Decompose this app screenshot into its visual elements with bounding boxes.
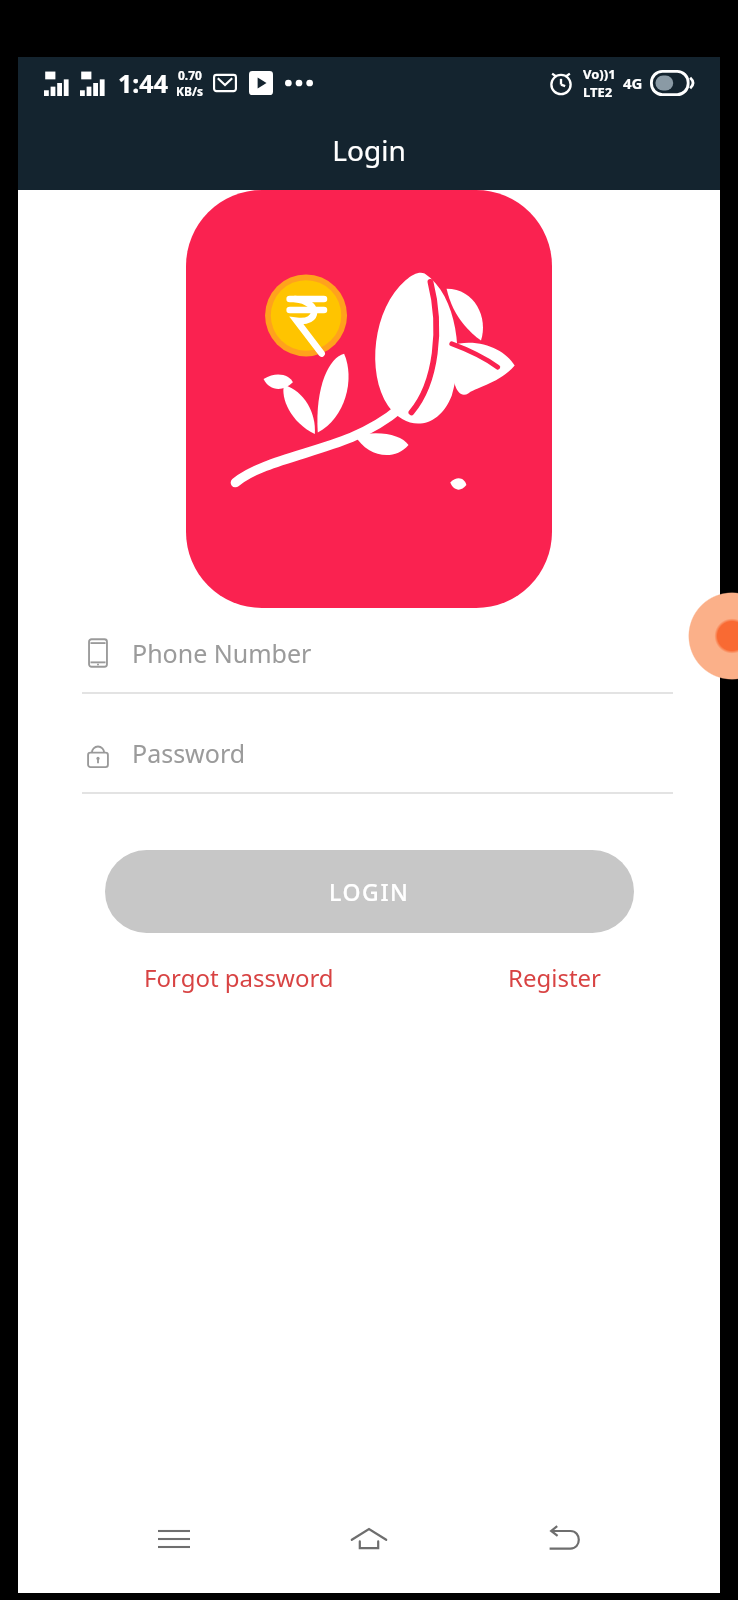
staticText: LOGIN — [329, 876, 410, 907]
staticText: 1:44 — [118, 66, 168, 100]
button[interactable]: Forgot password — [138, 955, 340, 1000]
button[interactable]: Phone Number — [82, 626, 673, 694]
button[interactable]: Register — [502, 955, 608, 1000]
staticText: KB/s — [176, 83, 203, 99]
staticText: Phone Number — [132, 636, 312, 670]
staticText: 4G — [623, 73, 643, 93]
button[interactable]: Password — [82, 726, 673, 794]
staticText: Forgot password — [144, 961, 334, 994]
staticText: Register — [508, 961, 602, 994]
staticText: LTE2 — [583, 83, 613, 101]
staticText: Password — [132, 736, 246, 770]
button[interactable]: Back — [526, 1501, 602, 1577]
staticText: 0.70 — [178, 67, 202, 83]
button[interactable]: Home — [331, 1501, 407, 1577]
staticText: Login — [18, 131, 720, 169]
button[interactable]: LOGIN — [105, 850, 634, 933]
staticText: Vo))1 — [583, 65, 616, 83]
button[interactable]: Menu — [136, 1501, 212, 1577]
